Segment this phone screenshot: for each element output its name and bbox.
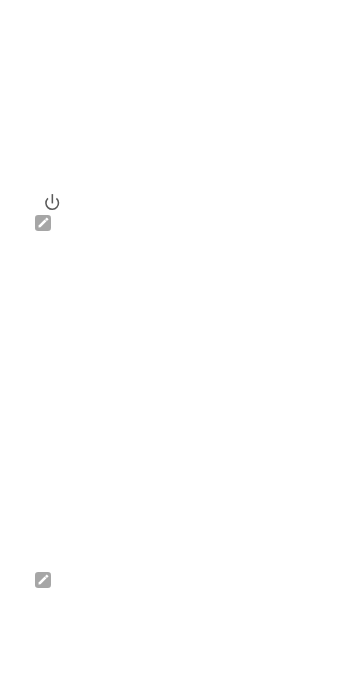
button[interactable]: Edit [35, 572, 51, 588]
button[interactable]: Power [45, 194, 61, 210]
button[interactable]: Edit [35, 215, 51, 231]
